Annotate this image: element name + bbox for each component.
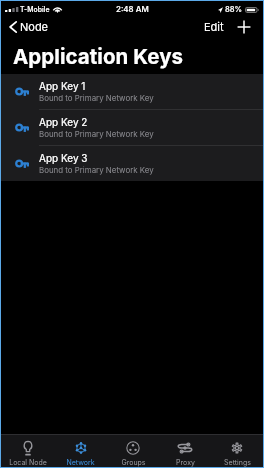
button[interactable]: Node (1, 19, 55, 37)
staticText: Proxy (176, 458, 195, 466)
staticText: App Key 2 (39, 116, 88, 128)
button[interactable]: Settings (211, 436, 263, 466)
button[interactable]: Add (234, 20, 254, 37)
staticText: Bound to Primary Network Key (39, 165, 154, 175)
staticText: Node (20, 20, 49, 33)
staticText: Settings (224, 458, 251, 466)
button[interactable]: Proxy (159, 436, 211, 466)
button[interactable]: Edit (199, 19, 229, 37)
staticText: Local Node (9, 458, 47, 466)
staticText: Network (66, 458, 95, 466)
button[interactable]: App Key 1 (1, 74, 263, 109)
button[interactable]: App Key 3 (1, 146, 263, 181)
staticText: 88% (225, 5, 243, 14)
button[interactable]: App Key 2 (1, 110, 263, 145)
staticText: App Key 3 (39, 152, 88, 164)
staticText: App Key 1 (39, 80, 86, 92)
staticText: Application Keys (13, 44, 184, 69)
staticText: Edit (204, 20, 224, 33)
staticText: Groups (121, 458, 146, 466)
staticText: 2:48 AM (116, 4, 149, 14)
staticText: Bound to Primary Network Key (39, 93, 154, 103)
staticText: T-Mobile (20, 5, 50, 13)
button[interactable]: Groups (107, 436, 159, 466)
button[interactable]: Network (54, 436, 107, 466)
button[interactable]: Local Node (1, 436, 54, 466)
staticText: Bound to Primary Network Key (39, 129, 154, 139)
